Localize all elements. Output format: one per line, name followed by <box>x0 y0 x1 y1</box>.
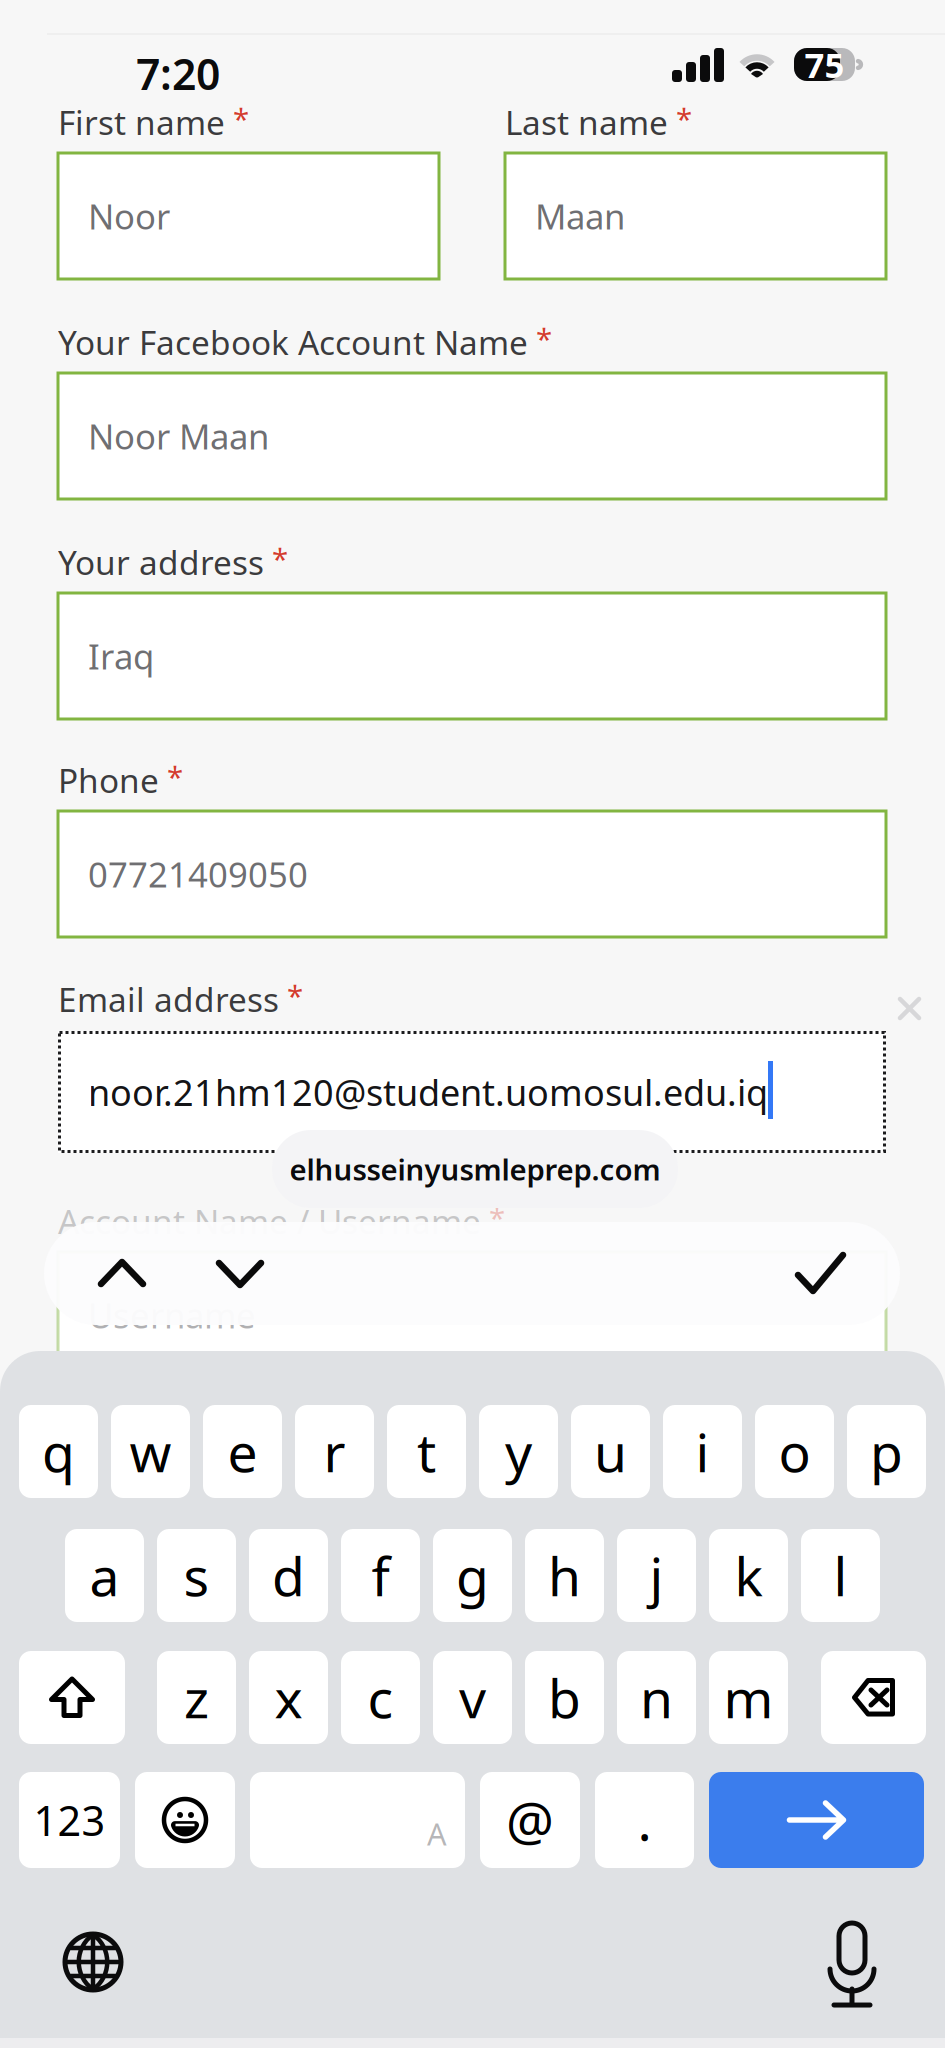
staticText: * <box>287 976 303 1015</box>
staticText: Maan <box>535 193 625 239</box>
staticText: Last name <box>505 100 668 144</box>
staticText: u <box>594 1416 627 1487</box>
button[interactable]: v <box>433 1651 512 1744</box>
button[interactable]: Shift <box>19 1651 125 1744</box>
staticText: q <box>42 1416 75 1487</box>
staticText: r <box>323 1416 345 1487</box>
button[interactable]: Next field <box>196 1238 284 1309</box>
button[interactable]: z <box>157 1651 236 1744</box>
button[interactable]: g <box>433 1529 512 1622</box>
staticText: d <box>272 1540 305 1611</box>
button[interactable]: Dictation <box>809 1907 895 2015</box>
staticText: Phone <box>58 758 159 802</box>
button[interactable]: 07721409050 <box>58 811 886 937</box>
button[interactable]: j <box>617 1529 696 1622</box>
staticText: @ <box>506 1785 554 1855</box>
staticText: 123 <box>33 1793 105 1847</box>
button[interactable]: noor.21hm120@student.uomosul.edu.iq <box>58 1031 886 1153</box>
button[interactable]: Next keyboard <box>48 1917 138 2007</box>
staticText: * <box>272 539 288 578</box>
button[interactable]: u <box>571 1405 650 1498</box>
button[interactable]: r <box>295 1405 374 1498</box>
button[interactable]: Iraq <box>58 593 886 719</box>
staticText: 75 <box>804 41 844 87</box>
staticText: o <box>778 1416 810 1487</box>
staticText: k <box>734 1540 762 1611</box>
staticText: l <box>833 1540 847 1611</box>
staticText: Email address <box>58 977 279 1021</box>
staticText: i <box>695 1416 709 1487</box>
button[interactable]: 123 <box>19 1772 120 1868</box>
button[interactable]: y <box>479 1405 558 1498</box>
button[interactable]: i <box>663 1405 742 1498</box>
staticText: Noor <box>88 193 170 239</box>
button[interactable]: Username <box>58 1252 886 1378</box>
staticText: b <box>548 1662 581 1733</box>
button[interactable]: @ <box>480 1772 580 1868</box>
button[interactable]: c <box>341 1651 420 1744</box>
staticText: Iraq <box>88 633 154 679</box>
staticText: g <box>456 1540 489 1611</box>
button[interactable]: m <box>709 1651 788 1744</box>
staticText: Account Name / Username <box>58 1199 481 1243</box>
staticText: * <box>489 1198 505 1237</box>
button[interactable]: h <box>525 1529 604 1622</box>
staticText: t <box>417 1416 436 1487</box>
staticText: 7:20 <box>136 45 220 102</box>
staticText: s <box>183 1540 209 1611</box>
staticText: y <box>505 1416 532 1487</box>
staticText: A <box>427 1813 447 1854</box>
button[interactable]: t <box>387 1405 466 1498</box>
button[interactable]: p <box>847 1405 926 1498</box>
button[interactable]: b <box>525 1651 604 1744</box>
staticText: * <box>233 99 249 138</box>
button[interactable]: Clear <box>882 981 937 1036</box>
staticText: 07721409050 <box>88 851 308 897</box>
button[interactable]: Go <box>709 1772 924 1868</box>
staticText: Your address <box>58 540 264 584</box>
button[interactable]: Noor Maan <box>58 373 886 499</box>
button[interactable]: Maan <box>505 153 886 279</box>
button[interactable]: o <box>755 1405 834 1498</box>
button[interactable]: n <box>617 1651 696 1744</box>
staticText: e <box>227 1416 257 1487</box>
staticText: z <box>184 1662 209 1733</box>
staticText: n <box>640 1662 673 1733</box>
staticText: p <box>870 1416 903 1487</box>
button[interactable]: s <box>157 1529 236 1622</box>
staticText: * <box>167 757 183 796</box>
staticText: noor.21hm120@student.uomosul.edu.iq <box>88 1068 768 1116</box>
button[interactable]: l <box>801 1529 880 1622</box>
button[interactable]: k <box>709 1529 788 1622</box>
staticText: elhusseinyusmleprep.com <box>289 1149 660 1188</box>
button[interactable]: x <box>249 1651 328 1744</box>
staticText: a <box>89 1540 119 1611</box>
staticText: * <box>536 319 552 358</box>
staticText: Noor Maan <box>88 413 269 459</box>
button[interactable]: Delete <box>821 1651 926 1744</box>
button[interactable]: e <box>203 1405 282 1498</box>
button[interactable]: Noor <box>58 153 439 279</box>
button[interactable]: a <box>65 1529 144 1622</box>
button[interactable]: w <box>111 1405 190 1498</box>
button[interactable]: Previous field <box>78 1238 166 1309</box>
button[interactable]: f <box>341 1529 420 1622</box>
staticText: m <box>723 1662 773 1733</box>
staticText: h <box>548 1540 581 1611</box>
staticText: v <box>459 1662 486 1733</box>
staticText: Username <box>88 1292 256 1338</box>
staticText: x <box>274 1662 302 1733</box>
button[interactable]: q <box>19 1405 98 1498</box>
staticText: f <box>371 1540 389 1611</box>
staticText: Your Facebook Account Name <box>58 320 528 364</box>
staticText: . <box>637 1785 651 1855</box>
button[interactable]: space <box>250 1772 465 1868</box>
staticText: w <box>129 1416 171 1487</box>
staticText: j <box>649 1540 663 1611</box>
button[interactable]: Emoji <box>135 1772 235 1868</box>
staticText: c <box>367 1662 393 1733</box>
staticText: First name <box>58 100 225 144</box>
button[interactable]: d <box>249 1529 328 1622</box>
button[interactable]: Done <box>776 1233 866 1314</box>
button[interactable]: . <box>595 1772 694 1868</box>
